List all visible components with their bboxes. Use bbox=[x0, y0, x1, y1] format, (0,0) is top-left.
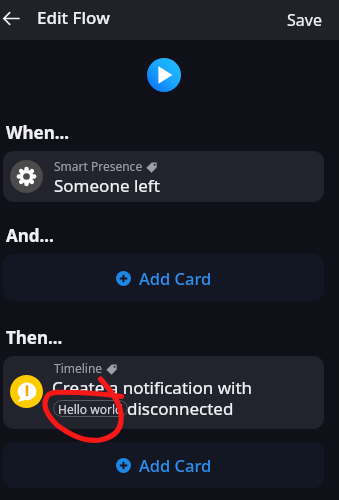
button[interactable]: Hello world bbox=[53, 400, 128, 417]
button[interactable]: Timeline bbox=[3, 356, 324, 429]
staticText: Add Card bbox=[139, 267, 212, 289]
staticText: Timeline bbox=[54, 360, 103, 376]
staticText: And... bbox=[6, 224, 54, 247]
button[interactable]: Run flow bbox=[147, 58, 181, 92]
staticText: Hello world bbox=[58, 401, 123, 417]
button[interactable]: Save bbox=[279, 3, 329, 36]
button[interactable]: Back bbox=[0, 3, 22, 33]
staticText: Create a notification with bbox=[52, 376, 253, 399]
staticText: disconnected bbox=[127, 397, 234, 420]
button[interactable]: Add Card bbox=[3, 254, 324, 301]
staticText: Save bbox=[287, 9, 322, 31]
button[interactable]: Smart Presence bbox=[3, 151, 324, 202]
button[interactable]: Add Card bbox=[3, 442, 324, 488]
staticText: Someone left bbox=[54, 174, 160, 197]
staticText: Smart Presence bbox=[54, 158, 143, 174]
staticText: Then... bbox=[6, 326, 63, 349]
staticText: When... bbox=[6, 121, 70, 144]
staticText: Edit Flow bbox=[37, 6, 110, 29]
staticText: Add Card bbox=[139, 454, 212, 476]
